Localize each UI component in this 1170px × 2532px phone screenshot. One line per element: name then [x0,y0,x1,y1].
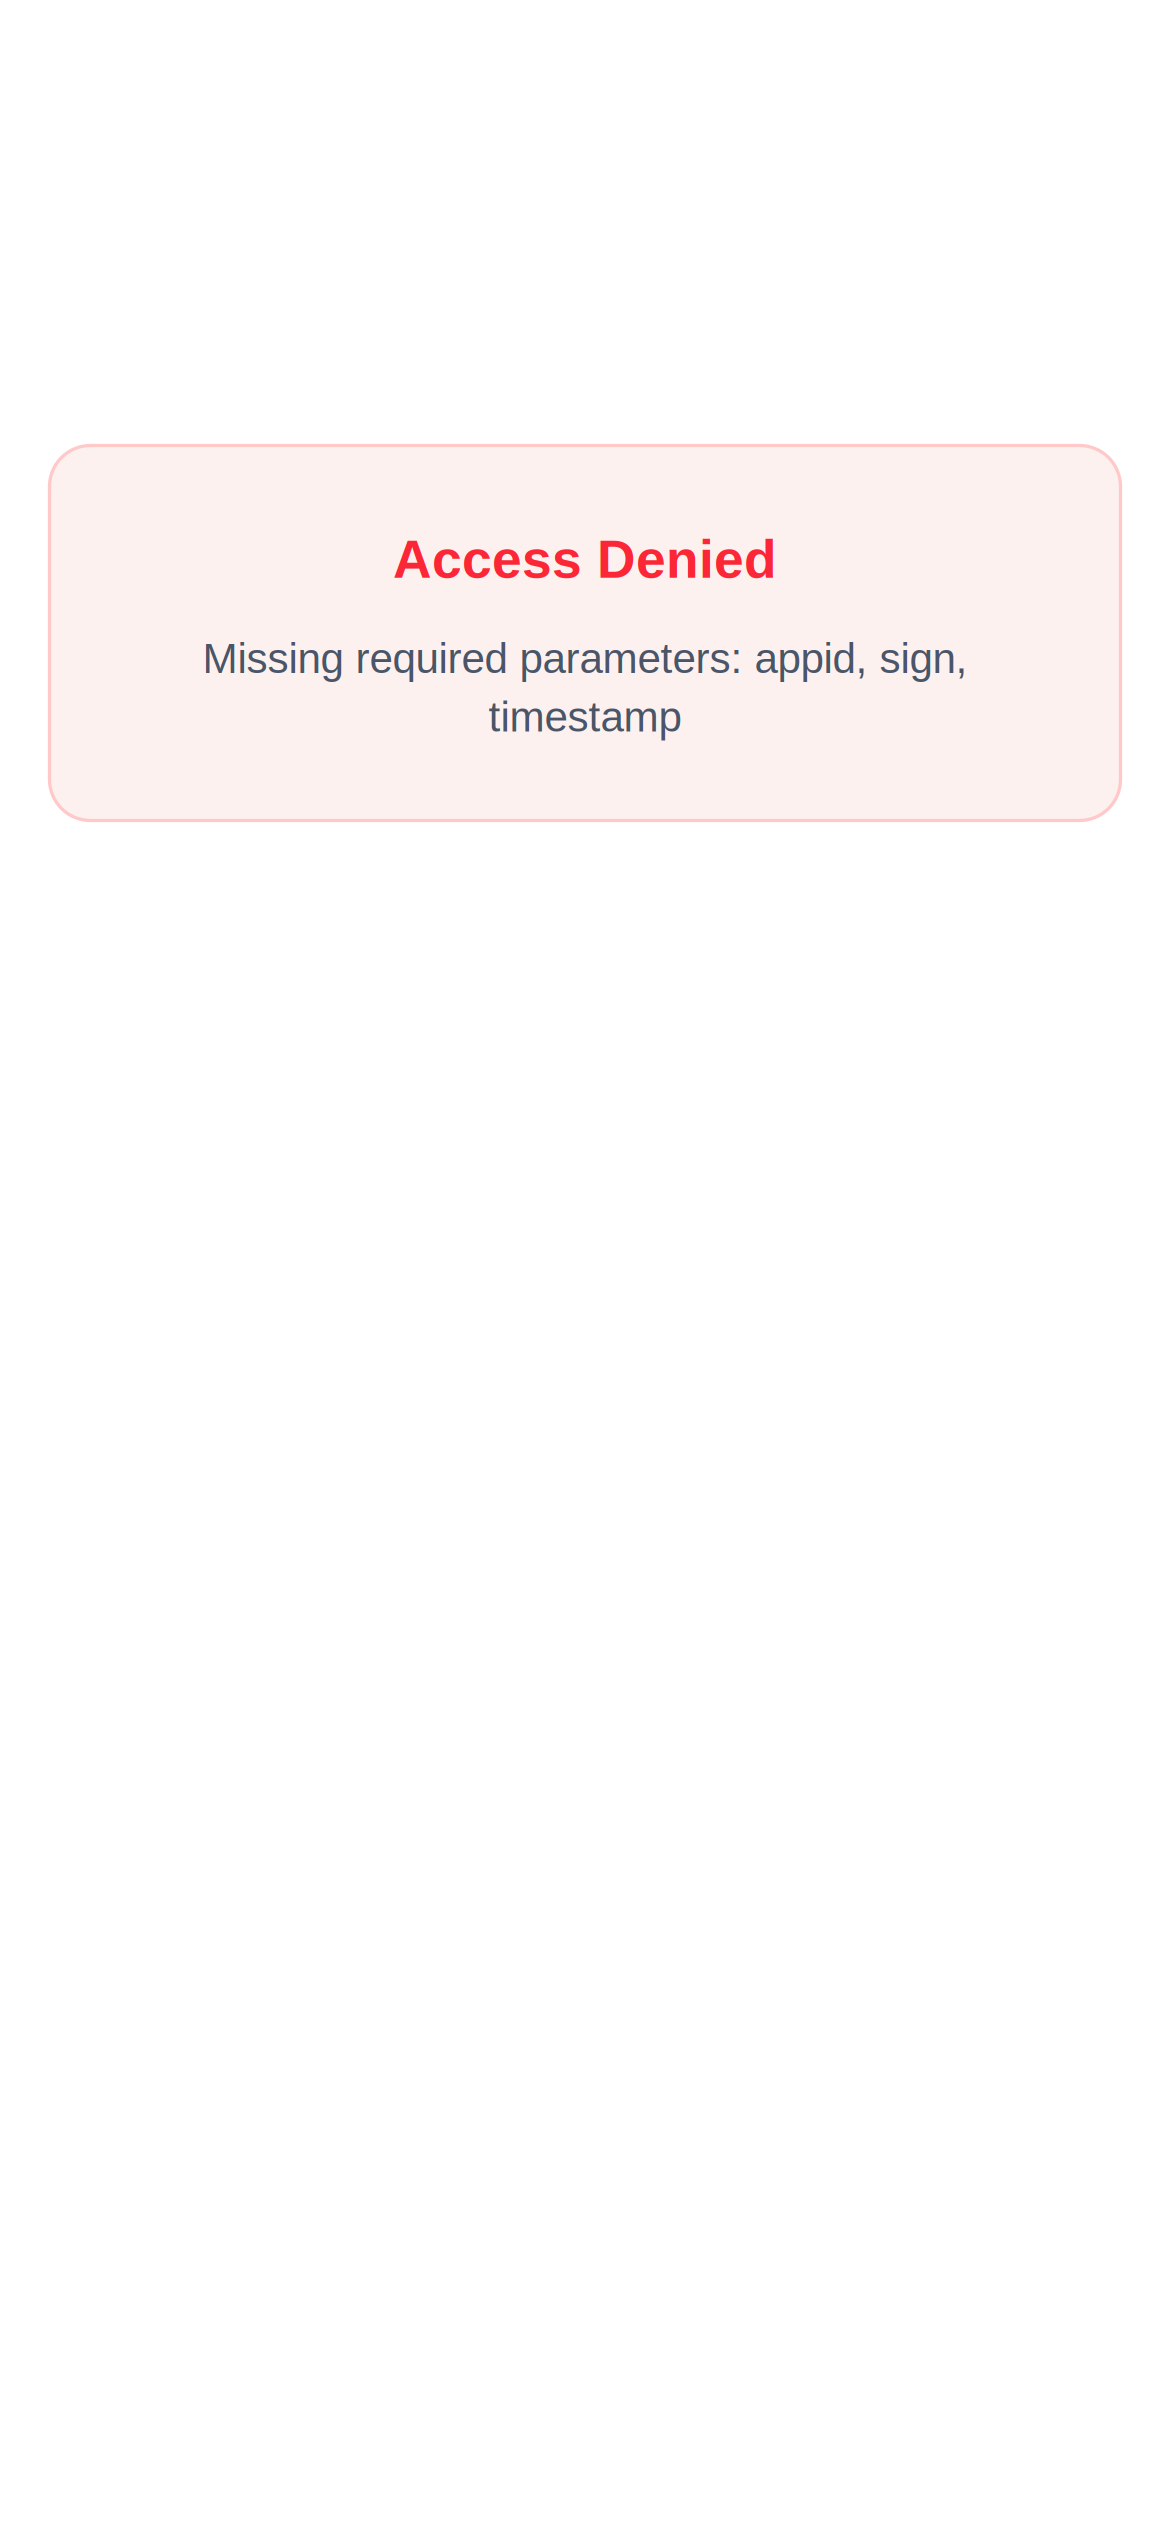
staticText: Access Denied [393,529,777,589]
staticText: timestamp [488,693,681,740]
staticText: Missing required parameters: appid, sign… [202,635,967,682]
